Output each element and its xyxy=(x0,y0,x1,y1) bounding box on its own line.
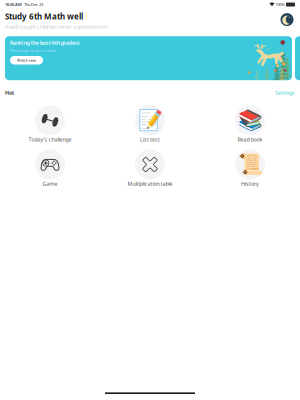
button[interactable]: Toggle dark mode xyxy=(279,13,295,29)
button[interactable]: Ranking the best 6th graders xyxy=(5,36,292,80)
staticText: Study 6th Math well xyxy=(5,11,83,22)
staticText: 📝 xyxy=(137,109,162,132)
staticText: 10:26 AM xyxy=(5,2,22,7)
staticText: Thu Dec 23 xyxy=(22,2,43,7)
button[interactable]: Multiplication table xyxy=(100,149,200,187)
staticText: List test xyxy=(140,136,160,143)
button[interactable]: 📚 xyxy=(200,105,300,143)
staticText: Ranking the best 6th graders xyxy=(10,39,80,46)
button[interactable]: 📜 xyxy=(200,149,300,187)
button[interactable]: Settings xyxy=(275,89,295,96)
staticText: Settings xyxy=(275,89,295,96)
staticText: Game xyxy=(42,180,57,187)
staticText: History xyxy=(241,180,259,187)
button[interactable]: Today's challenge xyxy=(0,105,100,143)
staticText: Watch now xyxy=(17,58,36,63)
staticText: Read book xyxy=(237,136,262,143)
staticText: Multiplication table xyxy=(127,180,172,187)
staticText: 100% xyxy=(274,2,284,7)
staticText: Please login to game center xyxy=(10,48,57,53)
staticText: Hot xyxy=(5,89,14,96)
staticText: 📚 xyxy=(237,109,262,132)
staticText: Today's challenge xyxy=(28,136,71,143)
staticText: 📜 xyxy=(237,153,262,176)
button[interactable]: 📝 xyxy=(100,105,200,143)
staticText: A well-taught child becomes a good perso… xyxy=(5,23,108,30)
button[interactable]: Game xyxy=(0,149,100,187)
